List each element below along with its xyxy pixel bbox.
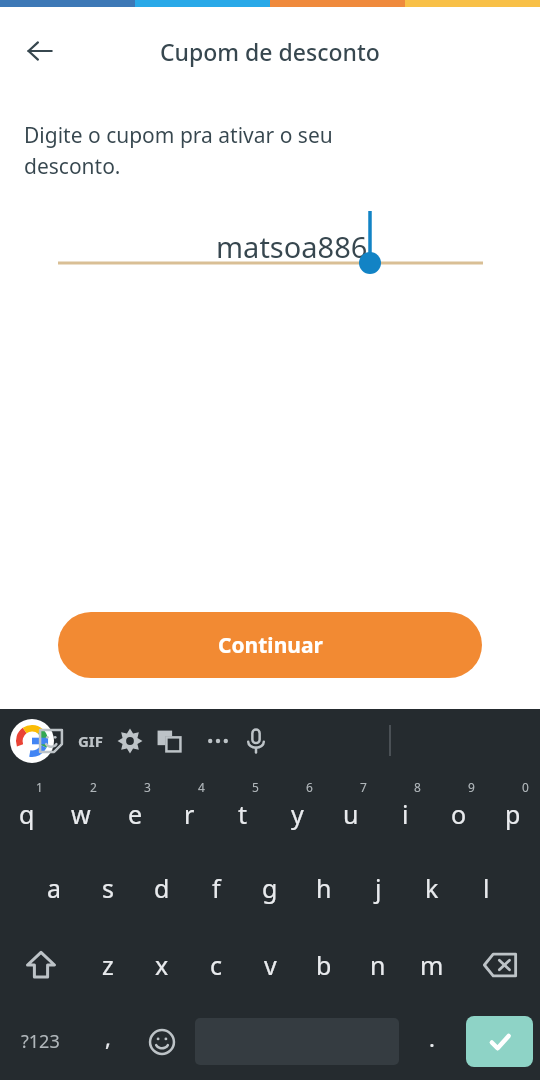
staticText: b (316, 948, 332, 982)
staticText: . (429, 1023, 435, 1053)
button[interactable]: n (351, 926, 405, 1003)
button[interactable]: a (27, 849, 81, 926)
button[interactable]: g (243, 849, 297, 926)
staticText: 9 (468, 779, 475, 795)
button[interactable]: k (405, 849, 459, 926)
button[interactable]: Emoji (135, 1003, 189, 1080)
staticText: ?123 (21, 1029, 60, 1054)
staticText: 1 (36, 779, 43, 795)
staticText: j (375, 871, 382, 905)
staticText: k (425, 871, 439, 905)
button[interactable]: l (459, 849, 513, 926)
button[interactable]: b (297, 926, 351, 1003)
button[interactable]: Translate (146, 718, 192, 764)
button[interactable]: 9 (432, 772, 486, 849)
button[interactable]: 2 (54, 772, 108, 849)
button[interactable]: GIF (67, 718, 113, 764)
staticText: matsoa886 (216, 227, 368, 266)
button[interactable]: matsoa886 (0, 200, 540, 272)
staticText: d (154, 871, 170, 905)
staticText: , (105, 1022, 111, 1052)
button[interactable]: , (81, 1003, 135, 1080)
staticText: w (71, 797, 91, 831)
staticText: Cupom de desconto (160, 36, 380, 67)
staticText: f (212, 871, 221, 905)
staticText: h (316, 871, 332, 905)
button[interactable]: Backspace (459, 926, 540, 1003)
staticText: g (262, 871, 278, 905)
staticText: p (505, 797, 521, 831)
button[interactable]: ?123 (0, 1003, 81, 1080)
button[interactable]: 3 (108, 772, 162, 849)
staticText: s (102, 871, 114, 905)
staticText: c (210, 948, 223, 982)
button[interactable]: 4 (162, 772, 216, 849)
button[interactable]: 1 (0, 772, 54, 849)
staticText: Continuar (218, 631, 323, 660)
button[interactable]: m (405, 926, 459, 1003)
button[interactable]: 6 (270, 772, 324, 849)
staticText: 8 (414, 779, 421, 795)
staticText: e (128, 797, 143, 831)
staticText: 2 (90, 779, 97, 795)
button[interactable]: c (189, 926, 243, 1003)
button[interactable]: Google (9, 718, 55, 764)
staticText: o (451, 797, 467, 831)
button[interactable]: h (297, 849, 351, 926)
button[interactable]: Back (14, 25, 66, 77)
staticText: z (102, 948, 114, 982)
button[interactable]: v (243, 926, 297, 1003)
button[interactable]: 5 (216, 772, 270, 849)
staticText: l (483, 871, 490, 905)
staticText: 0 (522, 779, 529, 795)
staticText: 6 (306, 779, 313, 795)
button[interactable]: x (135, 926, 189, 1003)
button[interactable]: j (351, 849, 405, 926)
staticText: 4 (198, 779, 205, 795)
staticText: n (370, 948, 386, 982)
button[interactable]: . (405, 1003, 459, 1080)
staticText: m (420, 948, 444, 982)
button[interactable]: f (189, 849, 243, 926)
staticText: v (264, 948, 277, 982)
button[interactable]: Stickers (28, 718, 74, 764)
staticText: 5 (252, 779, 259, 795)
staticText: t (238, 797, 248, 831)
staticText: 7 (360, 779, 367, 795)
staticText: GIF (78, 731, 103, 751)
staticText: x (155, 948, 169, 982)
staticText: q (19, 797, 35, 831)
staticText: Digite o cupom pra ativar o seu desconto… (24, 121, 333, 180)
staticText: i (402, 797, 409, 831)
button[interactable]: 0 (486, 772, 540, 849)
button[interactable]: 7 (324, 772, 378, 849)
button[interactable]: d (135, 849, 189, 926)
staticText: a (47, 871, 62, 905)
button[interactable]: Voice input (233, 718, 279, 764)
button[interactable]: Enter (466, 1016, 533, 1067)
button[interactable]: Shift (0, 926, 81, 1003)
staticText: u (343, 797, 359, 831)
button[interactable]: z (81, 926, 135, 1003)
staticText: r (184, 797, 195, 831)
button[interactable]: 8 (378, 772, 432, 849)
staticText: 3 (144, 779, 151, 795)
button[interactable]: Continuar (58, 612, 482, 678)
button[interactable]: s (81, 849, 135, 926)
button[interactable]: More options (195, 718, 241, 764)
button[interactable]: Settings (107, 718, 153, 764)
staticText: y (291, 797, 304, 831)
